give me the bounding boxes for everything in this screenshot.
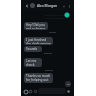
- button[interactable]: Sounds good: [24, 46, 42, 52]
- button[interactable]: I just finished the draft version of it: [24, 37, 53, 45]
- button[interactable]: More options: [67, 4, 71, 8]
- staticText: Thanks so much for helping out today: [26, 74, 51, 82]
- staticText: Alex Morgan: [37, 3, 58, 8]
- button[interactable]: Emoji: [23, 89, 28, 94]
- button[interactable]: Attach file: [28, 89, 33, 94]
- staticText: Messages are end-to-end encrypted: [43, 13, 67, 19]
- button[interactable]: Video call: [62, 4, 66, 8]
- staticText: Hey! Did you get a chance to look: [26, 23, 46, 29]
- button[interactable]: Send: [66, 89, 71, 94]
- button[interactable]: Let me check and get back soon ok: [24, 58, 42, 67]
- button[interactable]: Thanks so much for helping out today: [24, 73, 53, 83]
- button[interactable]: Back: [24, 3, 29, 8]
- button[interactable]: Scroll to bottom: [65, 81, 71, 87]
- staticText: Sounds good: [26, 47, 40, 51]
- staticText: Let me check and get back soon ok: [26, 59, 40, 66]
- button[interactable]: Hey! Did you get a chance to look: [24, 22, 48, 30]
- button[interactable]: Camera: [33, 89, 38, 94]
- staticText: I just finished the draft version of it: [26, 38, 51, 44]
- button[interactable]: AI assistant: [64, 12, 70, 18]
